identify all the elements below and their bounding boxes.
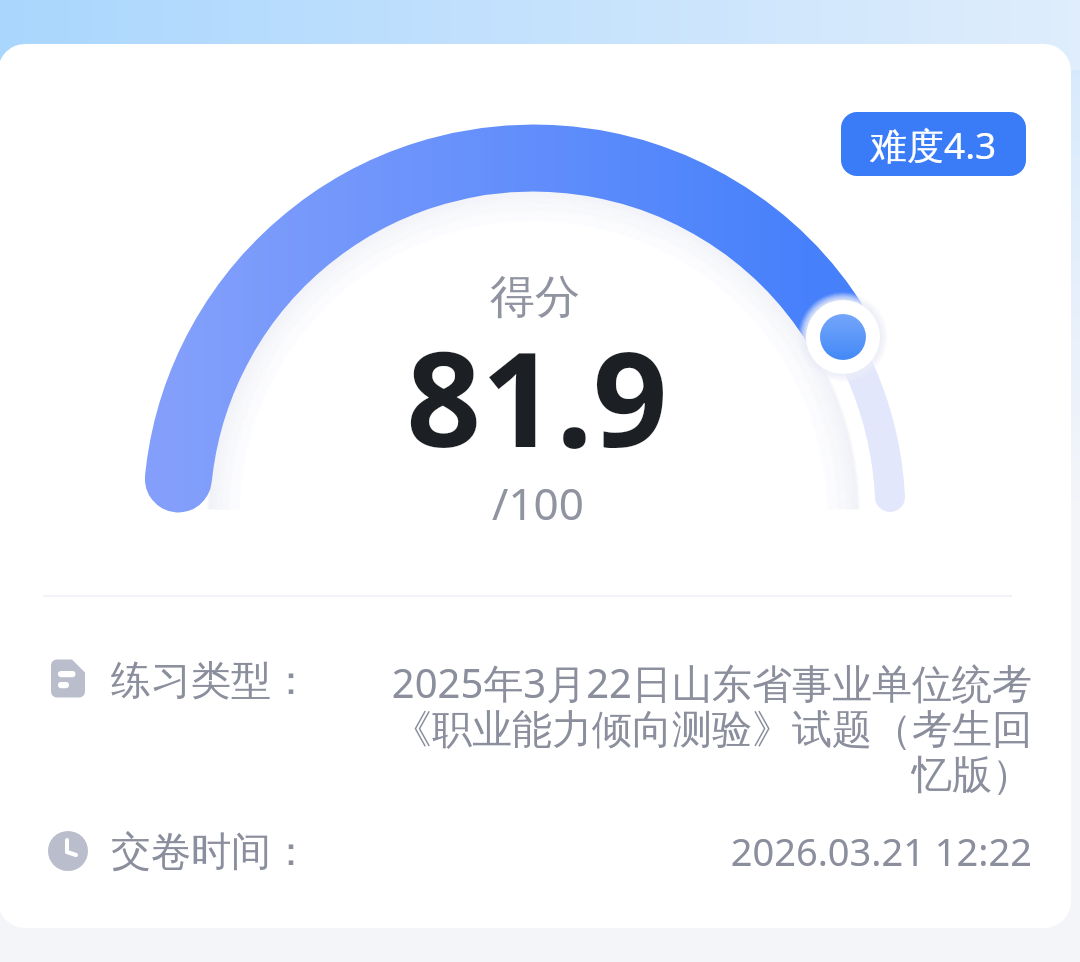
staticText: 2026.03.21 12:22 bbox=[311, 825, 1032, 877]
staticText: 交卷时间： bbox=[111, 826, 311, 876]
button[interactable]: 难度4.3 bbox=[841, 112, 1026, 176]
button[interactable]: 练习类型： bbox=[48, 655, 1032, 799]
staticText: 练习类型： bbox=[111, 655, 311, 705]
staticText: 2025年3月22日山东省事业单位统考《职业能力倾向测验》试题（考生回忆版） bbox=[378, 655, 1032, 799]
staticText: /100 bbox=[0, 473, 1078, 533]
staticText: 81.9 bbox=[0, 307, 1077, 485]
staticText: 难度4.3 bbox=[870, 119, 997, 170]
other: Time bbox=[48, 831, 88, 871]
staticText: 得分 bbox=[0, 269, 1075, 326]
button[interactable]: Time bbox=[48, 825, 1032, 877]
